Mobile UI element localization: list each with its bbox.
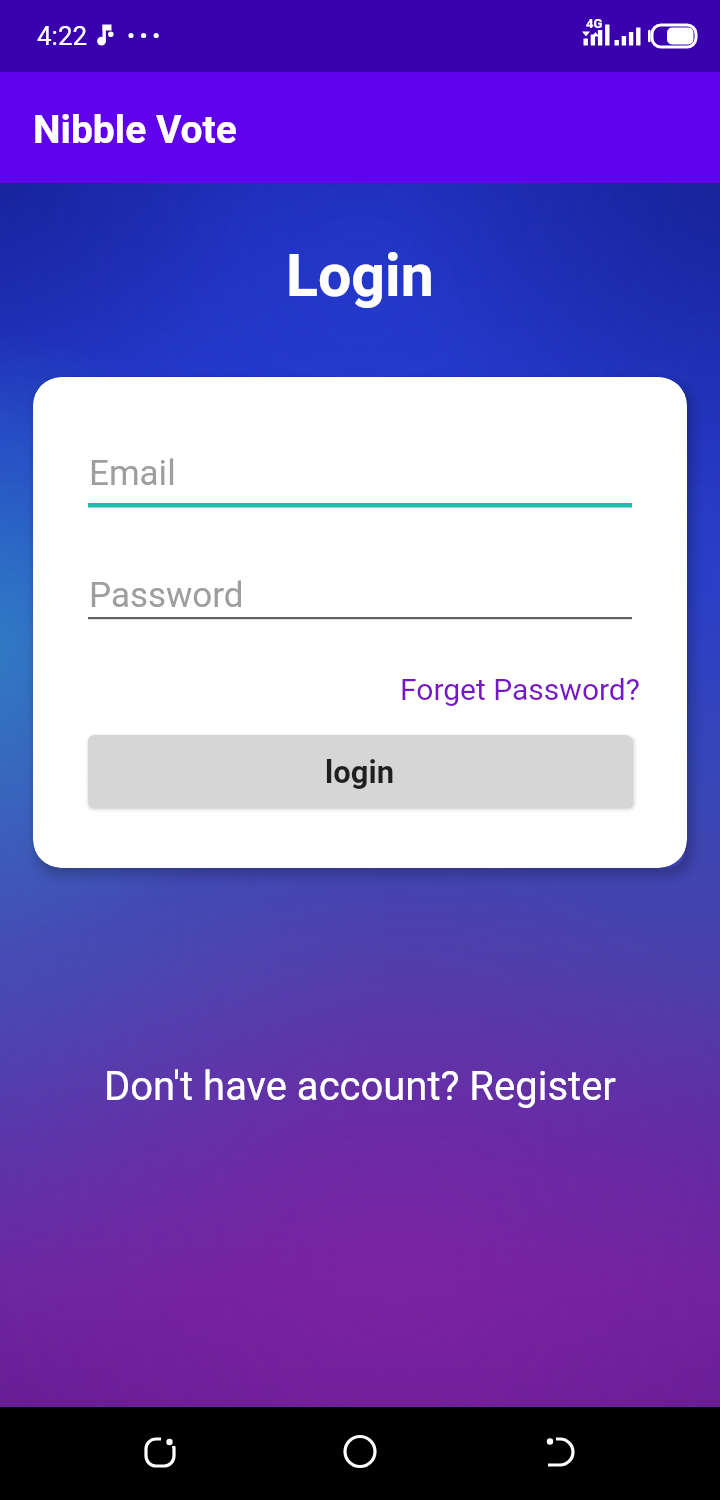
staticText: Password [89, 575, 244, 616]
staticText: Nibble Vote [33, 107, 237, 153]
button[interactable]: login [88, 735, 632, 808]
staticText: 4:22 [37, 21, 88, 51]
button[interactable] [480, 1407, 720, 1500]
button[interactable] [240, 1407, 480, 1500]
button[interactable]: Forget Password? [400, 672, 640, 707]
staticText: login [325, 754, 395, 790]
button[interactable] [0, 1407, 240, 1500]
staticText: Email [89, 453, 176, 494]
staticText: 4G [586, 16, 603, 31]
staticText: Login [286, 241, 434, 310]
button[interactable]: Don't have account? Register [104, 1063, 616, 1110]
